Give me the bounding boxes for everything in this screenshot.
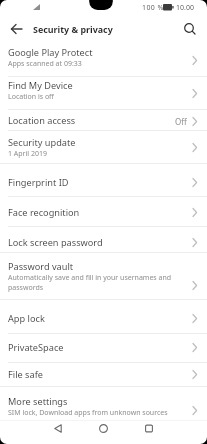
button[interactable]: App lock [0, 304, 207, 333]
staticText: Security update [8, 136, 76, 149]
staticText: Fingerprint ID [8, 176, 69, 189]
button[interactable]: Password vault [0, 258, 207, 299]
staticText: PrivateSpace [8, 341, 64, 354]
button[interactable]: More settings [0, 387, 207, 420]
button[interactable]: PrivateSpace [0, 334, 207, 362]
button[interactable]: Lock screen password [0, 227, 207, 252]
button[interactable]: File safe [0, 363, 207, 386]
button[interactable]: Fingerprint ID [0, 168, 207, 196]
staticText: Automatically save and fill in your user… [8, 273, 172, 293]
button[interactable]: Google Play Protect [0, 44, 207, 76]
button[interactable]: Face recognition [0, 197, 207, 226]
button[interactable] [145, 424, 153, 433]
button[interactable]: Find My Device [0, 77, 207, 109]
staticText: App lock [8, 312, 45, 325]
staticText: Off [175, 116, 187, 127]
staticText: Face recognition [8, 206, 80, 219]
staticText: 1 April 2019 [8, 149, 47, 159]
button[interactable] [99, 424, 108, 433]
button[interactable] [54, 424, 62, 433]
button[interactable]: Security update [0, 131, 207, 163]
staticText: Location is off [8, 92, 54, 102]
staticText: Apps scanned at 09:33 [8, 59, 82, 69]
staticText: 10.00 [176, 3, 194, 13]
staticText: Location access [8, 114, 76, 127]
button[interactable] [0, 24, 22, 34]
staticText: Password vault [8, 260, 74, 273]
staticText: SIM lock, Download apps from unknown sou… [8, 408, 168, 418]
staticText: Find My Device [8, 79, 73, 92]
staticText: 100 % [142, 3, 164, 13]
staticText: Google Play Protect [8, 46, 93, 59]
staticText: Lock screen password [8, 236, 103, 249]
staticText: Security & privacy [33, 23, 113, 35]
button[interactable] [184, 23, 207, 35]
staticText: File safe [8, 368, 43, 381]
staticText: More settings [8, 395, 68, 408]
button[interactable]: Location access [0, 110, 207, 130]
